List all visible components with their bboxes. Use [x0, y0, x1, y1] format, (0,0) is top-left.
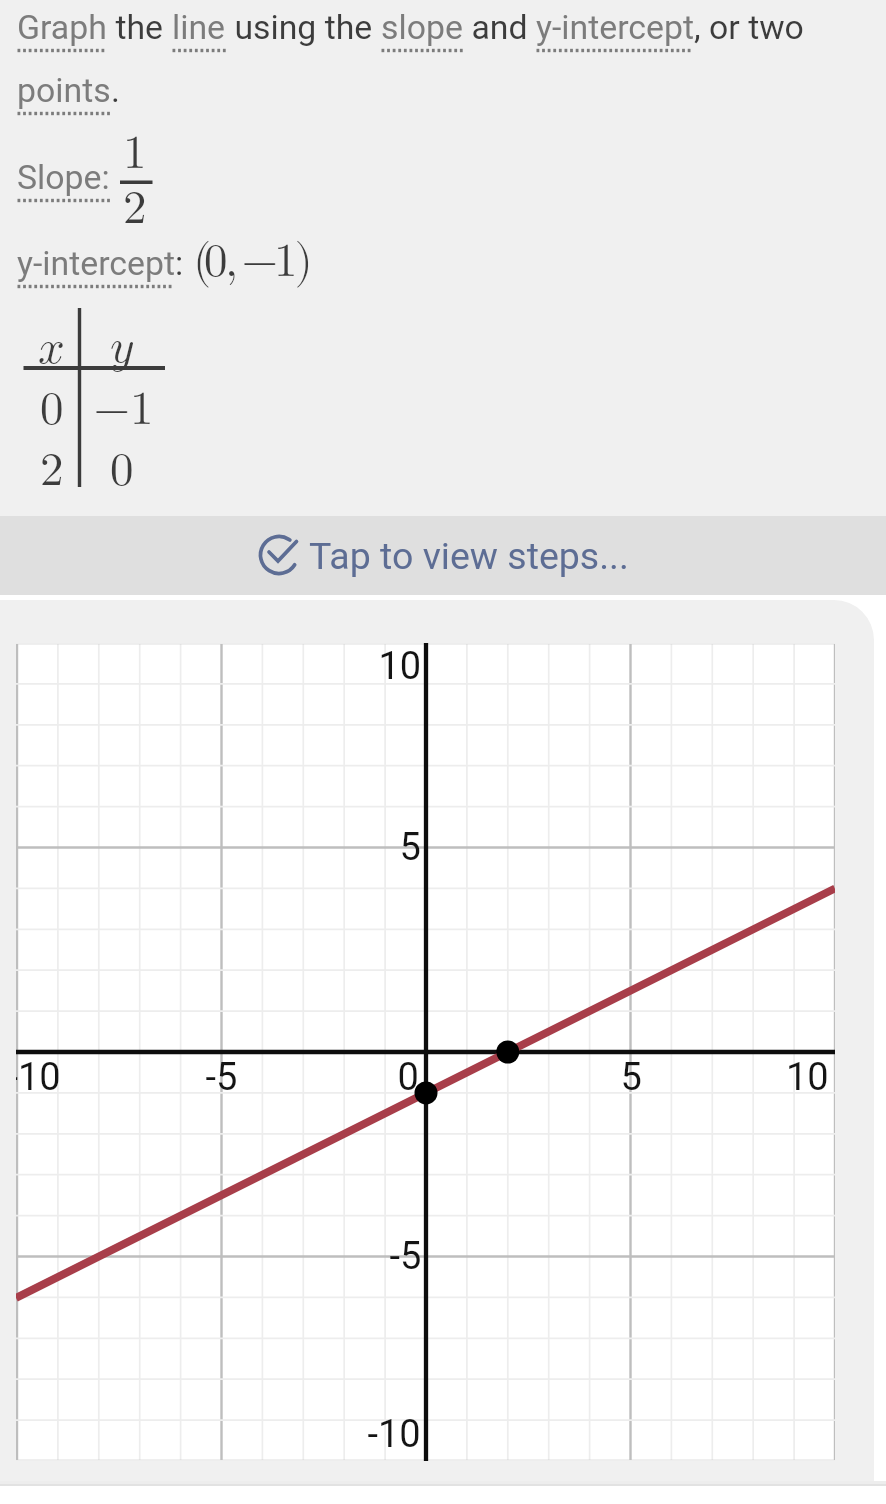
other: View steps: [261, 537, 299, 575]
button[interactable]: View steps: [0, 516, 886, 595]
button[interactable]: [0, 600, 874, 1481]
